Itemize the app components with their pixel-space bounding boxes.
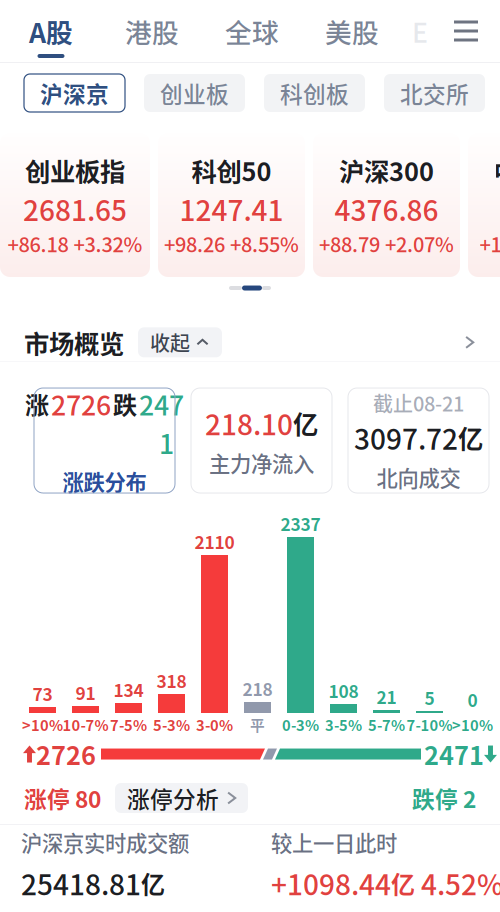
staticText: 21 <box>376 684 396 709</box>
staticText: 4.52% <box>415 863 500 903</box>
staticText: >10% <box>452 714 493 735</box>
staticText: 10-7% <box>62 714 108 735</box>
button[interactable]: 市场概览 <box>0 299 500 361</box>
staticText: 沪深300 <box>339 152 434 189</box>
staticText: 3-5% <box>325 714 362 735</box>
staticText: 218 <box>242 676 272 701</box>
button[interactable]: 中证A50 <box>468 133 500 277</box>
staticText: 亿 <box>458 419 483 456</box>
staticText: 2471 <box>424 736 484 772</box>
staticText: E <box>412 12 428 50</box>
button[interactable]: 美股 <box>302 0 402 62</box>
staticText: 收起 <box>150 328 190 357</box>
staticText: 亿 <box>141 866 165 900</box>
staticText: 5-3% <box>153 714 190 735</box>
staticText: 截止08-21 <box>373 388 464 417</box>
staticText: 108 <box>328 678 358 703</box>
staticText: 247 <box>139 384 184 423</box>
staticText: 5-7% <box>368 714 405 735</box>
staticText: +98.26 +8.55% <box>164 229 299 258</box>
button[interactable]: 科创50 <box>158 133 305 277</box>
staticText: 1 <box>159 423 174 462</box>
button[interactable]: 沪深300 <box>313 133 460 277</box>
staticText: 2681.65 <box>23 189 127 229</box>
staticText: +86.18 +3.32% <box>7 229 142 258</box>
staticText: A股 <box>29 12 73 51</box>
staticText: 沪深京 <box>40 77 109 109</box>
staticText: +11.x +1.xx% <box>479 229 500 258</box>
staticText: 全球 <box>225 12 279 50</box>
staticText: +1098.44 <box>271 863 391 903</box>
staticText: 1247.41 <box>179 189 283 229</box>
staticText: 较上一日此时 <box>271 827 397 858</box>
staticText: 涨 <box>25 386 49 421</box>
staticText: 跌停 2 <box>412 782 476 814</box>
staticText: 中证A50 <box>493 152 500 189</box>
button[interactable]: 科创板 <box>264 74 365 112</box>
button[interactable]: 港股 <box>102 0 202 62</box>
staticText: >10% <box>22 714 63 735</box>
staticText: 港股 <box>125 12 179 50</box>
button[interactable]: 创业板指 <box>0 133 150 277</box>
staticText: 市场概览 <box>24 324 124 361</box>
staticText: 科创板 <box>280 77 349 109</box>
staticText: 318 <box>156 668 186 693</box>
staticText: 平 <box>250 714 265 735</box>
staticText: 亿 <box>293 405 318 441</box>
staticText: 3-0% <box>196 714 233 735</box>
button[interactable]: 截止08-21 <box>348 388 489 493</box>
staticText: 73 <box>32 681 52 706</box>
staticText: 创业板指 <box>25 152 125 189</box>
staticText: 创业板 <box>160 77 229 109</box>
staticText: 7-10% <box>406 714 452 735</box>
button[interactable]: 全球 <box>202 0 302 62</box>
button[interactable]: 创业板 <box>144 74 245 112</box>
staticText: 北向成交 <box>376 462 460 493</box>
staticText: 北交所 <box>400 77 469 109</box>
staticText: 0 <box>467 687 477 712</box>
button[interactable]: Menu <box>446 0 486 62</box>
staticText: 218.10 <box>205 403 293 443</box>
staticText: 3097.72 <box>354 417 458 458</box>
staticText: +88.79 +2.07% <box>319 229 454 258</box>
staticText: 亿 <box>391 866 415 900</box>
button[interactable]: 沪深京 <box>24 74 125 112</box>
button[interactable]: 涨停分析 <box>115 783 248 813</box>
staticText: 涨停分析 <box>127 782 219 814</box>
staticText: 2110 <box>194 529 234 554</box>
staticText: 5 <box>424 685 434 710</box>
staticText: 美股 <box>325 12 379 50</box>
staticText: 91 <box>75 680 95 705</box>
staticText: 主力净流入 <box>209 447 314 478</box>
button[interactable]: 北交所 <box>384 74 485 112</box>
staticText: 2726 <box>51 384 111 423</box>
staticText: 2726 <box>36 736 96 772</box>
staticText: 25418.81 <box>21 863 141 903</box>
staticText: 沪深京实时成交额 <box>21 827 189 858</box>
button[interactable]: E <box>402 0 438 62</box>
staticText: 涨停 80 <box>24 782 101 814</box>
staticText: 134 <box>113 677 143 702</box>
button[interactable]: 涨 <box>34 388 175 493</box>
staticText: 7-5% <box>110 714 147 735</box>
staticText: 科创50 <box>191 152 271 189</box>
staticText: 0-3% <box>282 714 319 735</box>
staticText: 跌 <box>113 386 137 421</box>
staticText: 涨跌分布 <box>62 466 146 497</box>
staticText: 2337 <box>280 511 320 536</box>
staticText: 4376.86 <box>334 189 438 229</box>
button[interactable]: A股 <box>0 0 102 62</box>
button[interactable]: 218.10 <box>191 388 332 493</box>
